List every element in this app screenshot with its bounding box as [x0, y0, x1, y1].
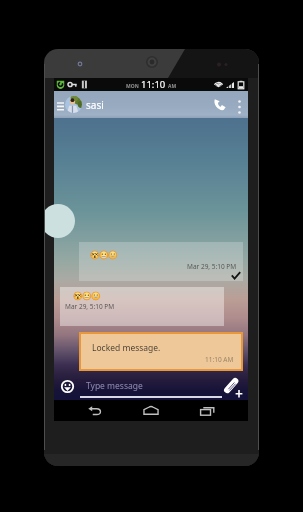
staticText: AM	[168, 83, 177, 90]
staticText: Mar 29, 5:10 PM	[187, 262, 237, 271]
staticText: 11:10 AM	[205, 355, 234, 364]
staticText: Type message	[86, 380, 143, 392]
button[interactable]: Call	[210, 92, 230, 118]
staticText: sasi	[86, 98, 104, 112]
button[interactable]: Locked message.	[81, 334, 241, 369]
staticText: Locked message.	[92, 342, 161, 354]
button[interactable]: Home	[138, 400, 164, 421]
button[interactable]: Open navigation drawer	[55, 93, 65, 117]
button[interactable]: More options	[233, 92, 245, 118]
button[interactable]: Attach file	[224, 377, 244, 398]
button[interactable]: Back	[82, 400, 108, 421]
staticText: 11:10	[141, 78, 166, 91]
button[interactable]: Contact photo	[65, 96, 82, 113]
button[interactable]: Mar 29, 5:10 PM	[79, 242, 243, 281]
button[interactable]: Mar 29, 5:10 PM	[60, 287, 224, 326]
button[interactable]: Recent apps	[194, 400, 220, 421]
staticText: MON	[126, 83, 139, 90]
staticText: Mar 29, 5:10 PM	[65, 302, 115, 311]
button[interactable]: Insert emoji	[61, 380, 74, 393]
